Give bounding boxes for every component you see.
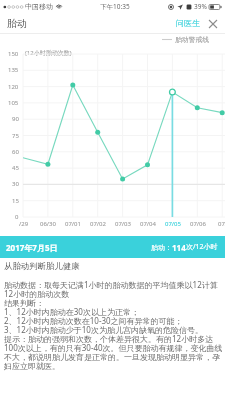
staticText: 中国移动 bbox=[25, 2, 53, 11]
staticText: 07/ bbox=[218, 220, 225, 228]
staticText: 105 bbox=[8, 99, 19, 107]
staticText: 75 bbox=[12, 132, 19, 140]
staticText: 07/02 bbox=[90, 220, 106, 228]
staticText: 07/06 bbox=[190, 220, 206, 228]
staticText: 90 bbox=[12, 115, 19, 123]
staticText: 114 bbox=[172, 242, 186, 253]
staticText: 120 bbox=[8, 83, 19, 91]
staticText: 135 bbox=[8, 66, 19, 74]
staticText: 胎动警戒线 bbox=[175, 35, 209, 44]
staticText: 0 bbox=[15, 213, 19, 221]
staticText: 39% bbox=[194, 2, 207, 11]
staticText: 下午10:35 bbox=[100, 2, 130, 11]
staticText: 15 bbox=[12, 197, 19, 205]
staticText: 45 bbox=[12, 164, 19, 172]
staticText: /29 bbox=[19, 220, 29, 228]
staticText: 06/30 bbox=[40, 220, 56, 228]
staticText: (12小时胎动次数) bbox=[25, 49, 72, 57]
staticText: 150 bbox=[8, 50, 19, 58]
staticText: 2017年7月5日 bbox=[6, 242, 58, 253]
button[interactable]: 问医生 bbox=[174, 15, 202, 31]
staticText: 07/05 bbox=[165, 220, 181, 228]
staticText: 07/03 bbox=[115, 220, 131, 228]
staticText: 胎动： bbox=[151, 243, 172, 252]
staticText: 07/04 bbox=[140, 220, 156, 228]
staticText: 30 bbox=[12, 180, 19, 188]
staticText: 问医生 bbox=[176, 18, 200, 28]
staticText: 次/12小时 bbox=[186, 242, 218, 252]
staticText: 从胎动判断胎儿健康 bbox=[4, 261, 80, 272]
button[interactable]: Close bbox=[206, 17, 219, 30]
staticText: 胎动 bbox=[7, 17, 27, 30]
staticText: 07/01 bbox=[65, 220, 81, 228]
staticText: 60 bbox=[12, 148, 19, 156]
staticText: 胎动数据：取每天记满1小时的胎动数据的平均值乘以12计算12小时的胎动次数 结果… bbox=[4, 279, 224, 371]
